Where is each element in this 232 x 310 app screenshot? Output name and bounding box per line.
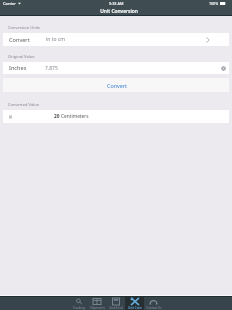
button[interactable]: Shipments [88,297,106,310]
staticText: Shipments [90,306,105,310]
staticText: 20 [54,113,60,120]
button[interactable]: Contact Us [144,297,163,310]
button[interactable]: Tracking [70,297,88,310]
staticText: Inches [9,64,27,72]
staticText: 100% [209,1,219,6]
staticText: Unit Conversion [3,8,232,15]
staticText: 9:33 AM [109,1,124,6]
staticText: Smith Cal [109,306,123,310]
button[interactable]: Convert [3,33,229,46]
staticText: Contact Us [146,306,162,310]
staticText: Carrier [3,1,17,6]
button[interactable]: Inches [3,62,229,74]
other: Clear value [221,66,226,71]
staticText: Converted Value [8,102,39,107]
staticText: Convert [107,82,127,89]
staticText: in to cm [46,36,65,43]
other: Options [9,115,12,119]
button[interactable]: Unit Conv [125,297,144,310]
other: Choose conversion units [206,37,210,43]
staticText: Conversion Units [8,25,41,30]
staticText: Tracking [73,306,85,310]
button[interactable]: Convert [3,78,229,92]
staticText: Original Value [8,54,35,59]
staticText: Centimeters [61,113,89,120]
staticText: 7.875 [45,65,58,72]
button[interactable]: Options [3,110,229,123]
button[interactable]: Smith Cal [106,297,125,310]
staticText: Convert [9,36,30,44]
staticText: Unit Conv [128,306,142,310]
